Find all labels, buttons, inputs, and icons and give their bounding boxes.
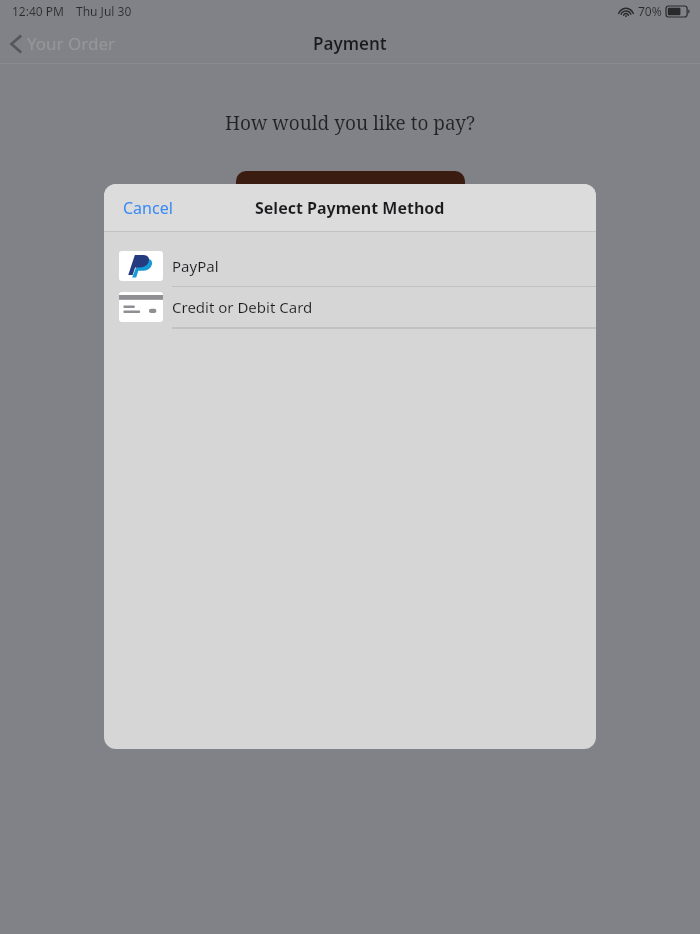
staticText: How would you like to pay? [0, 110, 700, 136]
button[interactable]: Credit or Debit Card [104, 287, 596, 328]
other: Credit or Debit Card [119, 292, 163, 322]
staticText: 70% [638, 3, 662, 19]
button[interactable]: Your Order [0, 26, 126, 61]
button[interactable]: PayPal [104, 246, 596, 287]
staticText: Thu Jul 30 [76, 3, 132, 19]
button[interactable] [236, 171, 465, 223]
staticText: Credit or Debit Card [172, 297, 313, 317]
staticText: Your Order [27, 32, 116, 55]
button[interactable]: Cancel [104, 187, 192, 229]
staticText: Select Payment Method [255, 197, 445, 219]
other: PayPal [119, 251, 163, 281]
staticText: Payment [313, 32, 387, 55]
staticText: PayPal [172, 256, 219, 276]
staticText: 12:40 PM [12, 3, 64, 19]
